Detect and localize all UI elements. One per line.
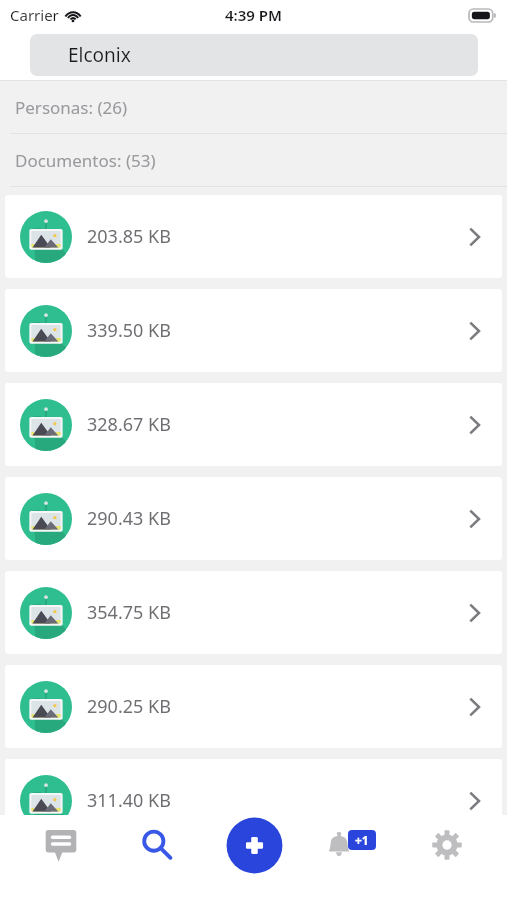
button[interactable]: Messages <box>25 815 97 875</box>
button[interactable]: Documentos: (53) <box>0 134 507 186</box>
staticText: +1 <box>355 832 369 848</box>
button[interactable]: Personas: (26) <box>0 81 507 133</box>
staticText: Carrier <box>10 5 59 25</box>
button[interactable]: 290.43 KB <box>5 477 502 560</box>
staticText: Personas: (26) <box>15 96 128 119</box>
button[interactable]: 354.75 KB <box>5 571 502 654</box>
button[interactable]: Add <box>218 815 290 875</box>
staticText: 203.85 KB <box>87 224 171 249</box>
staticText: 290.43 KB <box>87 506 171 531</box>
staticText: 311.40 KB <box>87 788 171 813</box>
button[interactable]: 311.40 KB <box>5 759 502 842</box>
staticText: 354.75 KB <box>87 600 171 625</box>
button[interactable]: Notifications <box>314 815 386 875</box>
button[interactable]: 290.25 KB <box>5 665 502 748</box>
button[interactable]: Settings <box>411 815 483 875</box>
button[interactable]: 339.50 KB <box>5 289 502 372</box>
staticText: Elconix <box>68 42 131 68</box>
staticText: 4:39 PM <box>225 5 282 25</box>
staticText: 290.25 KB <box>87 694 171 719</box>
staticText: 328.67 KB <box>87 412 171 437</box>
staticText: 339.50 KB <box>87 318 171 343</box>
button[interactable]: Search <box>121 815 193 875</box>
button[interactable]: 203.85 KB <box>5 195 502 278</box>
button[interactable]: 328.67 KB <box>5 383 502 466</box>
button[interactable]: Elconix <box>30 34 478 76</box>
staticText: Documentos: (53) <box>15 149 156 172</box>
